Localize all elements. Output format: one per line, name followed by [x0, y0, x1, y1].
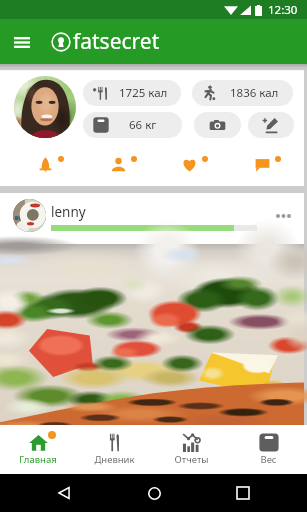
button[interactable]: Add photo [194, 112, 241, 138]
staticText: lenny [51, 203, 86, 221]
button[interactable]: Back [46, 474, 82, 512]
button[interactable]: Отчеты [153, 425, 230, 474]
button[interactable]: Дневник [76, 425, 153, 474]
staticText: Дневник [94, 453, 135, 466]
staticText: Отчеты [174, 453, 209, 466]
button[interactable]: Likes [174, 148, 216, 174]
button[interactable]: More options [270, 203, 296, 229]
button[interactable]: Вес [230, 425, 307, 474]
button[interactable]: Home [136, 474, 172, 512]
button[interactable]: Notifications [30, 148, 72, 174]
button[interactable]: 66 кг [83, 112, 182, 138]
button[interactable]: 1725 кал [83, 80, 181, 106]
staticText: 1725 кал [119, 85, 168, 101]
staticText: Главная [19, 453, 57, 466]
button[interactable]: 1836 кал [192, 80, 293, 106]
button[interactable]: lenny profile photo [13, 199, 46, 232]
button[interactable]: Recent apps [225, 474, 261, 512]
staticText: Вес [260, 453, 277, 466]
button[interactable]: Главная [0, 425, 76, 474]
staticText: 66 кг [129, 117, 157, 133]
button[interactable]: Profile photo [14, 76, 76, 138]
button[interactable]: Friends [103, 148, 145, 174]
button[interactable]: Messages [247, 148, 289, 174]
staticText: fatsecret [73, 27, 160, 56]
button[interactable]: Quick add [248, 112, 294, 138]
staticText: 1836 кал [230, 85, 279, 101]
button[interactable]: Open navigation menu [6, 26, 38, 58]
staticText: 12:30 [268, 2, 298, 18]
